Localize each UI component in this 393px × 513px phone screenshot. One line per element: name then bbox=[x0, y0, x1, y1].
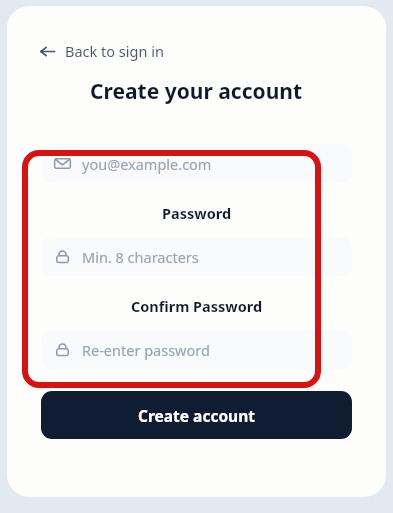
button[interactable]: Email address bbox=[41, 144, 352, 183]
staticText: you@example.com bbox=[82, 154, 212, 174]
button[interactable]: Create account bbox=[41, 391, 352, 439]
staticText: Back to sign in bbox=[65, 41, 164, 61]
button[interactable]: Back to sign in bbox=[33, 38, 170, 64]
staticText: Confirm Password bbox=[131, 296, 263, 316]
staticText: Create account bbox=[138, 405, 255, 426]
staticText: Re-enter password bbox=[82, 340, 210, 360]
button[interactable]: Confirm password bbox=[41, 330, 352, 369]
staticText: Min. 8 characters bbox=[82, 247, 199, 267]
button[interactable]: Password bbox=[41, 237, 352, 276]
staticText: Password bbox=[162, 203, 232, 223]
staticText: Create your account bbox=[90, 77, 303, 106]
